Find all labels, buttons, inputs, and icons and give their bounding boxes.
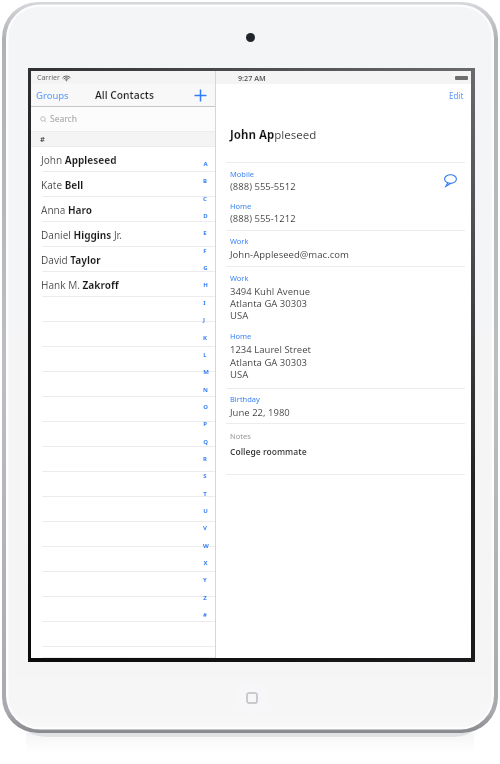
staticText: C	[203, 195, 207, 203]
button[interactable]: John Appleseed	[31, 147, 215, 172]
button[interactable]: Groups	[36, 89, 69, 102]
staticText: S	[203, 472, 207, 480]
button[interactable]: Work	[230, 236, 249, 246]
button[interactable]: Home	[230, 331, 252, 341]
staticText: 3494 Kuhl Avenue	[230, 285, 311, 298]
button[interactable]: Work	[230, 273, 249, 283]
staticText: Y	[203, 576, 207, 584]
button[interactable]: Home	[236, 682, 268, 714]
button[interactable]: Hank M. Zakroff	[31, 272, 215, 297]
staticText: A	[203, 160, 208, 168]
staticText: Q	[203, 438, 208, 446]
staticText: John Appleseed	[230, 127, 317, 143]
staticText: Daniel Higgins Jr.	[41, 228, 122, 242]
staticText: 1234 Laurel Street	[230, 343, 311, 356]
staticText: O	[203, 403, 208, 411]
staticText: Hank M. Zakroff	[41, 278, 119, 292]
staticText: Search	[50, 113, 77, 125]
staticText: (888) 555-1212	[230, 212, 296, 225]
staticText: U	[203, 507, 208, 515]
staticText: June 22, 1980	[230, 406, 290, 419]
button[interactable]: Notes	[230, 431, 251, 441]
staticText: N	[203, 386, 208, 394]
staticText: USA	[230, 368, 249, 381]
button[interactable]: Birthday	[230, 394, 260, 404]
button[interactable]: Add contact	[192, 87, 208, 103]
staticText: W	[203, 542, 209, 550]
staticText: X	[203, 559, 208, 567]
staticText: #	[40, 134, 45, 144]
button[interactable]: Kate Bell	[31, 172, 215, 197]
button[interactable]: Mobile	[230, 169, 255, 179]
staticText: D	[203, 212, 208, 220]
button[interactable]: Home	[230, 201, 252, 211]
staticText: John-Appleseed@mac.com	[230, 248, 349, 261]
staticText: College roommate	[230, 446, 307, 458]
staticText: All Contacts	[95, 88, 154, 102]
staticText: David Taylor	[41, 253, 101, 267]
staticText: T	[203, 490, 207, 498]
staticText: K	[203, 334, 207, 342]
staticText: Anna Haro	[41, 203, 93, 217]
staticText: B	[203, 177, 207, 185]
staticText: Kate Bell	[41, 178, 84, 192]
button[interactable]: David Taylor	[31, 247, 215, 272]
button[interactable]: Message	[444, 174, 457, 187]
button[interactable]: Daniel Higgins Jr.	[31, 222, 215, 247]
button[interactable]: Edit	[449, 90, 464, 101]
staticText: L	[203, 351, 207, 359]
staticText: (888) 555-5512	[230, 180, 296, 193]
button[interactable]: Anna Haro	[31, 197, 215, 222]
staticText: F	[203, 247, 207, 255]
staticText: V	[203, 524, 207, 532]
staticText: H	[203, 281, 208, 289]
staticText: John Appleseed	[41, 153, 117, 167]
staticText: Atlanta GA 30303	[230, 297, 308, 310]
staticText: J	[203, 316, 205, 324]
staticText: Z	[203, 594, 207, 602]
staticText: #	[203, 611, 207, 619]
staticText: P	[203, 420, 207, 428]
staticText: USA	[230, 309, 249, 322]
staticText: Atlanta GA 30303	[230, 356, 308, 369]
staticText: I	[203, 299, 206, 307]
staticText: R	[203, 455, 207, 463]
button[interactable]: Search	[31, 107, 215, 131]
staticText: G	[203, 264, 208, 272]
staticText: E	[203, 229, 207, 237]
staticText: Carrier	[37, 73, 60, 83]
staticText: 9:27 AM	[238, 73, 266, 83]
staticText: M	[203, 368, 209, 376]
